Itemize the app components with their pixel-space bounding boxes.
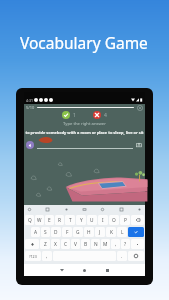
button[interactable]: Enter (128, 227, 144, 237)
staticText: ?123 (29, 254, 37, 259)
staticText: L (121, 229, 124, 236)
staticText: P (124, 217, 127, 224)
staticText: , (115, 241, 117, 248)
button[interactable]: Period (131, 239, 144, 249)
button[interactable]: , (111, 239, 120, 249)
button[interactable]: Close (136, 104, 143, 111)
button[interactable]: Q (25, 215, 34, 225)
button[interactable]: Camera (135, 141, 143, 149)
button[interactable]: H (84, 227, 94, 237)
button[interactable]: Keyboard tool (45, 207, 50, 212)
button[interactable]: Keyboard tool (100, 207, 105, 212)
button[interactable]: N (91, 239, 100, 249)
staticText: I (102, 217, 104, 224)
button[interactable]: Back (55, 264, 68, 276)
button[interactable]: P (120, 215, 130, 225)
button[interactable]: Backspace (131, 215, 144, 225)
staticText: M (103, 241, 108, 248)
button[interactable]: Keyboard tool (82, 207, 87, 212)
button[interactable]: Keyboard tool (119, 207, 124, 212)
button[interactable]: B (81, 239, 90, 249)
staticText: C (64, 241, 68, 248)
staticText: X (54, 241, 57, 248)
staticText: O (112, 217, 116, 224)
staticText: S (44, 229, 47, 236)
button[interactable]: V (71, 239, 80, 249)
button[interactable]: S (41, 227, 50, 237)
staticText: Vocabulary Game (20, 32, 148, 53)
staticText: . (121, 253, 123, 259)
button[interactable]: G (73, 227, 83, 237)
staticText: B (84, 241, 88, 248)
staticText: A (34, 229, 38, 236)
staticText: F (66, 229, 69, 236)
staticText: Type the right answer (63, 121, 106, 127)
button[interactable]: K (106, 227, 116, 237)
button[interactable]: O (109, 215, 119, 225)
button[interactable]: D (51, 227, 61, 237)
staticText: 1 (73, 112, 76, 119)
button[interactable]: Keyboard tool (137, 207, 142, 212)
button[interactable]: Home (78, 264, 91, 276)
button[interactable]: , (42, 251, 52, 261)
button[interactable]: . (117, 251, 127, 261)
staticText: E (48, 217, 51, 224)
button[interactable]: T (65, 215, 75, 225)
button[interactable]: L (117, 227, 127, 237)
staticText: W (37, 217, 42, 224)
staticText: T (69, 217, 72, 224)
button[interactable]: ? (121, 239, 130, 249)
button[interactable]: F (62, 227, 72, 237)
button[interactable]: Emoji (128, 251, 144, 261)
button[interactable]: R (55, 215, 64, 225)
button[interactable]: Z (40, 239, 50, 249)
staticText: Y (80, 217, 83, 224)
button[interactable]: Play audio (26, 141, 34, 149)
button[interactable]: J (95, 227, 105, 237)
button[interactable]: Y (76, 215, 86, 225)
staticText: Z (44, 241, 47, 248)
staticText: to provide somebody with a room or place… (25, 130, 144, 135)
staticText: V (74, 241, 77, 248)
staticText: 4 (104, 112, 107, 119)
button[interactable]: C (61, 239, 70, 249)
staticText: U (90, 217, 94, 224)
button[interactable]: Recent apps (101, 264, 114, 276)
button[interactable]: M (101, 239, 110, 249)
staticText: K (110, 229, 113, 236)
button[interactable]: Keyboard tool (64, 207, 69, 212)
button[interactable]: W (35, 215, 44, 225)
staticText: G (76, 229, 80, 236)
staticText: H (87, 229, 91, 236)
button[interactable]: ?123 (25, 251, 41, 261)
staticText: R (58, 217, 61, 224)
staticText: N (94, 241, 98, 248)
button[interactable]: A (31, 227, 40, 237)
staticText: Q (28, 217, 32, 224)
staticText: D (54, 229, 58, 236)
button[interactable]: I (98, 215, 108, 225)
button[interactable]: Keyboard tool (27, 207, 32, 212)
staticText: , (46, 253, 48, 259)
button[interactable]: X (51, 239, 60, 249)
button[interactable]: U (87, 215, 97, 225)
staticText: 5/10 (26, 105, 35, 110)
staticText: J (99, 229, 101, 236)
button[interactable]: Shift (25, 239, 39, 249)
staticText: 4:31 (26, 98, 33, 103)
staticText: ? (124, 241, 127, 248)
button[interactable]: E (45, 215, 54, 225)
